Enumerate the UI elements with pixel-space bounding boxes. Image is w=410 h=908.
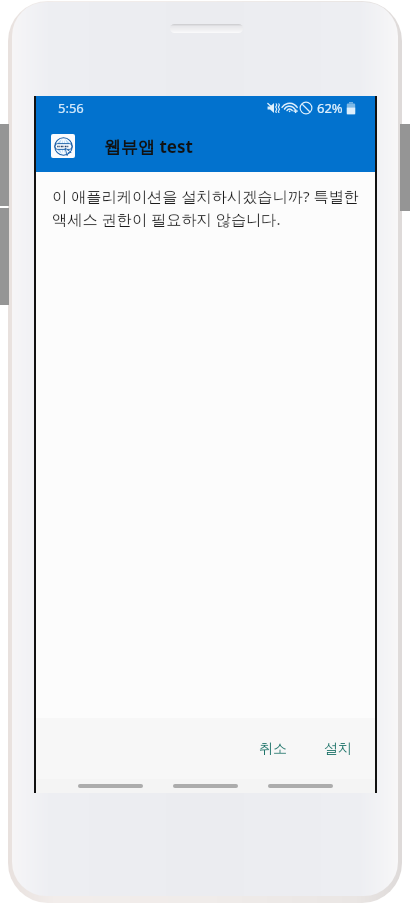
- staticText: 5:56: [58, 99, 84, 117]
- button[interactable]: Back: [253, 779, 348, 793]
- button[interactable]: App icon: [51, 134, 75, 158]
- button[interactable]: Recents: [63, 779, 158, 793]
- staticText: 62%: [317, 99, 343, 117]
- staticText: 취소: [259, 740, 287, 758]
- button[interactable]: 설치: [314, 730, 362, 768]
- staticText: 설치: [324, 740, 352, 758]
- staticText: 이 애플리케이션을 설치하시겠습니까? 특별한 액세스 권한이 필요하지 않습니…: [52, 186, 368, 230]
- button[interactable]: Home: [158, 779, 253, 793]
- button[interactable]: 취소: [249, 730, 297, 768]
- staticText: 웹뷰앱 test: [104, 135, 193, 158]
